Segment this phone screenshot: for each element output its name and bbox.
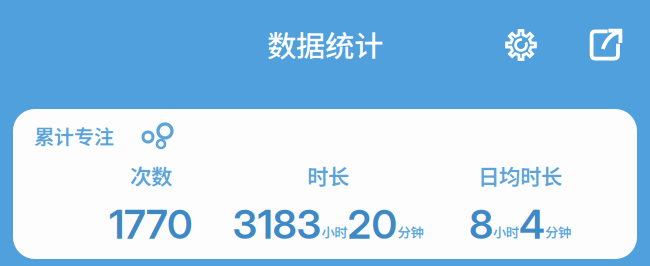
staticText: 小时: [321, 222, 347, 241]
button[interactable]: Settings: [494, 21, 548, 69]
staticText: 20: [347, 200, 397, 248]
staticText: 4: [519, 200, 545, 248]
staticText: 分钟: [397, 222, 423, 241]
staticText: 累计专注: [34, 121, 114, 150]
staticText: 时长: [307, 160, 349, 191]
staticText: 8: [469, 200, 493, 248]
staticText: 3183: [232, 200, 321, 248]
button[interactable]: Share: [579, 21, 633, 69]
staticText: 分钟: [545, 222, 571, 241]
staticText: 次数: [130, 160, 172, 191]
staticText: 日均时长: [478, 160, 562, 191]
staticText: 小时: [493, 222, 519, 241]
staticText: 数据统计: [267, 23, 383, 65]
staticText: 1770: [109, 200, 193, 248]
